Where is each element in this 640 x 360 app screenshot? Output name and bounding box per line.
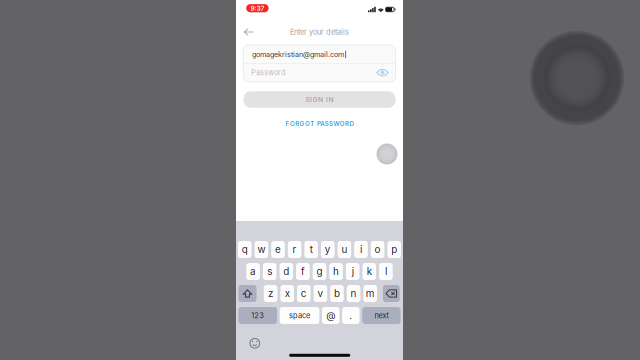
button[interactable]: f [296,263,310,280]
button[interactable]: b [330,285,344,302]
button[interactable]: s [263,263,276,280]
staticText: v [317,287,323,299]
button[interactable]: @ [322,307,339,324]
staticText: o [375,243,381,255]
button[interactable]: FORGOT PASSWORD [276,116,363,131]
button[interactable]: c [297,285,311,302]
button[interactable]: Show password [375,67,390,79]
button[interactable]: Emoji [248,337,262,350]
staticText: . [349,310,352,321]
staticText: b [334,287,340,299]
button[interactable]: next [362,307,401,324]
staticText: x [285,287,290,299]
button[interactable]: space [280,307,319,324]
button[interactable]: r [288,241,301,258]
staticText: Password [251,68,286,77]
staticText: @ [326,310,335,321]
staticText: z [268,287,273,299]
button[interactable]: a [246,263,260,280]
staticText: l [385,265,387,277]
staticText: j [352,265,354,277]
button[interactable]: h [329,263,343,280]
button[interactable]: z [264,285,277,302]
button[interactable]: k [362,263,376,280]
button[interactable]: o [371,241,384,258]
staticText: c [301,287,307,299]
button[interactable]: p [387,241,401,258]
staticText: s [267,265,272,277]
button[interactable]: n [347,285,360,302]
staticText: t [310,243,313,255]
staticText: n [351,287,357,299]
button[interactable]: u [338,241,351,258]
staticText: h [333,265,339,277]
button[interactable]: Shift [238,285,256,302]
button[interactable]: g [313,263,326,280]
staticText: gomagekristian@gmail.com [252,50,344,59]
button[interactable]: i [354,241,368,258]
button[interactable]: v [314,285,327,302]
staticText: i [360,243,362,255]
button[interactable]: y [321,241,335,258]
staticText: FORGOT PASSWORD [286,120,353,127]
staticText: u [341,243,347,255]
staticText: r [293,243,297,255]
button[interactable]: l [379,263,393,280]
staticText: a [250,265,256,277]
button[interactable]: t [304,241,318,258]
button[interactable]: w [255,241,268,258]
staticText: m [366,287,375,299]
button[interactable]: x [280,285,294,302]
staticText: SIGN IN [305,95,333,104]
staticText: next [374,311,388,320]
staticText: q [242,243,248,255]
staticText: y [325,243,331,255]
button[interactable]: Delete [383,285,400,302]
staticText: g [316,265,322,277]
button[interactable]: Back [238,23,258,41]
button[interactable]: q [238,241,252,258]
staticText: k [367,265,372,277]
staticText: 9:37 [250,4,264,12]
button[interactable]: SIGN IN [243,91,395,108]
staticText: Enter your details [290,27,349,36]
button[interactable]: . [342,307,360,324]
button[interactable]: 123 [238,307,277,324]
staticText: d [283,265,289,277]
button[interactable]: e [271,241,285,258]
staticText: w [257,243,265,255]
staticText: f [301,265,305,277]
button[interactable]: j [346,263,359,280]
button[interactable]: m [363,285,377,302]
staticText: space [289,311,310,320]
staticText: e [275,243,281,255]
staticText: 123 [251,311,264,320]
button[interactable]: d [279,263,293,280]
staticText: p [391,243,397,255]
